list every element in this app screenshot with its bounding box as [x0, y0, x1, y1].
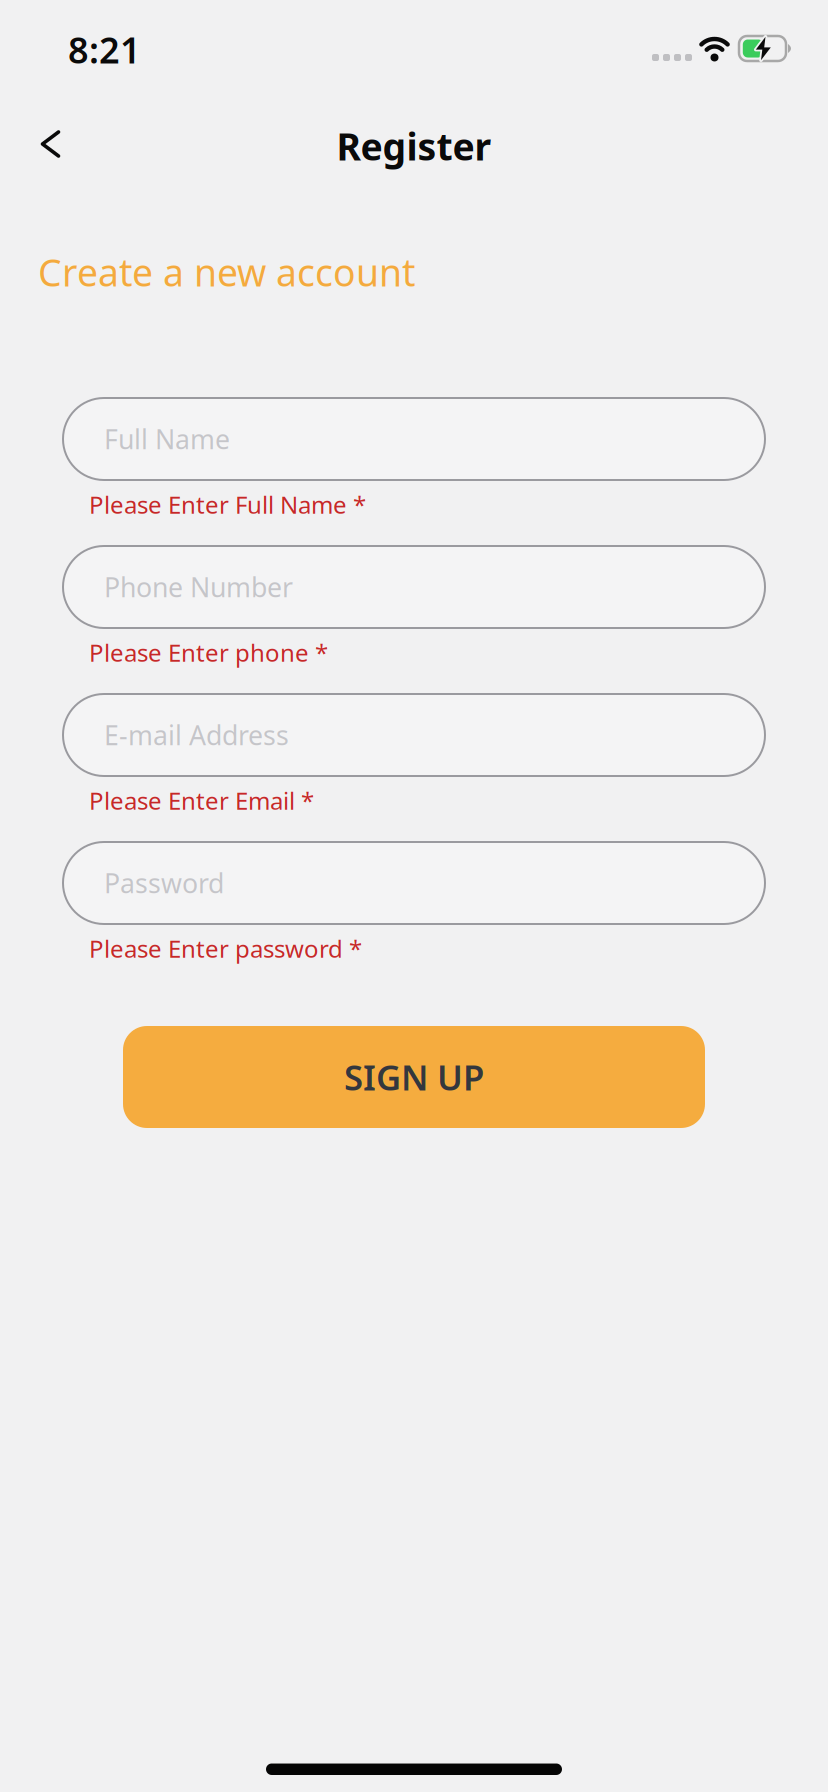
staticText: Please Enter phone *: [89, 637, 328, 668]
staticText: Please Enter Full Name *: [89, 489, 366, 520]
button[interactable]: Phone Number: [63, 546, 765, 628]
staticText: SIGN UP: [344, 1054, 484, 1100]
button[interactable]: Password: [63, 842, 765, 924]
button[interactable]: Full Name: [63, 398, 765, 480]
button[interactable]: Back: [28, 122, 72, 166]
staticText: E-mail Address: [104, 717, 289, 753]
staticText: Phone Number: [104, 569, 293, 605]
staticText: Please Enter password *: [89, 933, 362, 964]
staticText: Register: [336, 121, 491, 171]
staticText: Create a new account: [38, 247, 415, 297]
button[interactable]: E-mail Address: [63, 694, 765, 776]
staticText: Full Name: [104, 421, 230, 457]
button[interactable]: SIGN UP: [123, 1026, 705, 1128]
staticText: 8:21: [68, 26, 141, 73]
staticText: Password: [104, 865, 224, 901]
staticText: Please Enter Email *: [89, 785, 314, 816]
